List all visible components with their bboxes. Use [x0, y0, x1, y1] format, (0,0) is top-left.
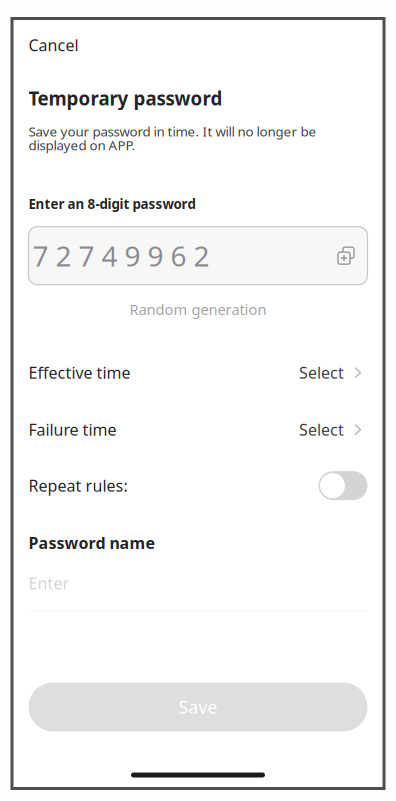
- button[interactable]: Failure time: [12, 401, 384, 458]
- staticText: Save: [178, 695, 217, 718]
- staticText: Select: [299, 362, 344, 383]
- staticText: Password name: [28, 532, 155, 553]
- staticText: Repeat rules:: [28, 475, 127, 496]
- staticText: Random generation: [129, 300, 266, 319]
- button[interactable]: Cancel: [12, 18, 95, 66]
- staticText: Enter an 8-digit password: [28, 195, 195, 213]
- staticText: Temporary password: [28, 86, 222, 110]
- button[interactable]: Repeat rules: [318, 471, 367, 500]
- staticText: Enter: [28, 572, 69, 594]
- button[interactable]: Random generation: [12, 294, 384, 325]
- staticText: Cancel: [28, 34, 78, 56]
- staticText: Select: [299, 419, 344, 440]
- button[interactable]: Save: [28, 682, 367, 731]
- staticText: 7 2 7 4 9 9 6 2: [32, 237, 209, 274]
- button[interactable]: Copy password: [327, 247, 354, 264]
- button[interactable]: Enter: [12, 553, 384, 612]
- button[interactable]: Effective time: [12, 344, 384, 401]
- staticText: Failure time: [28, 419, 116, 440]
- staticText: Effective time: [28, 362, 130, 383]
- staticText: Save your password in time. It will no l…: [28, 122, 316, 154]
